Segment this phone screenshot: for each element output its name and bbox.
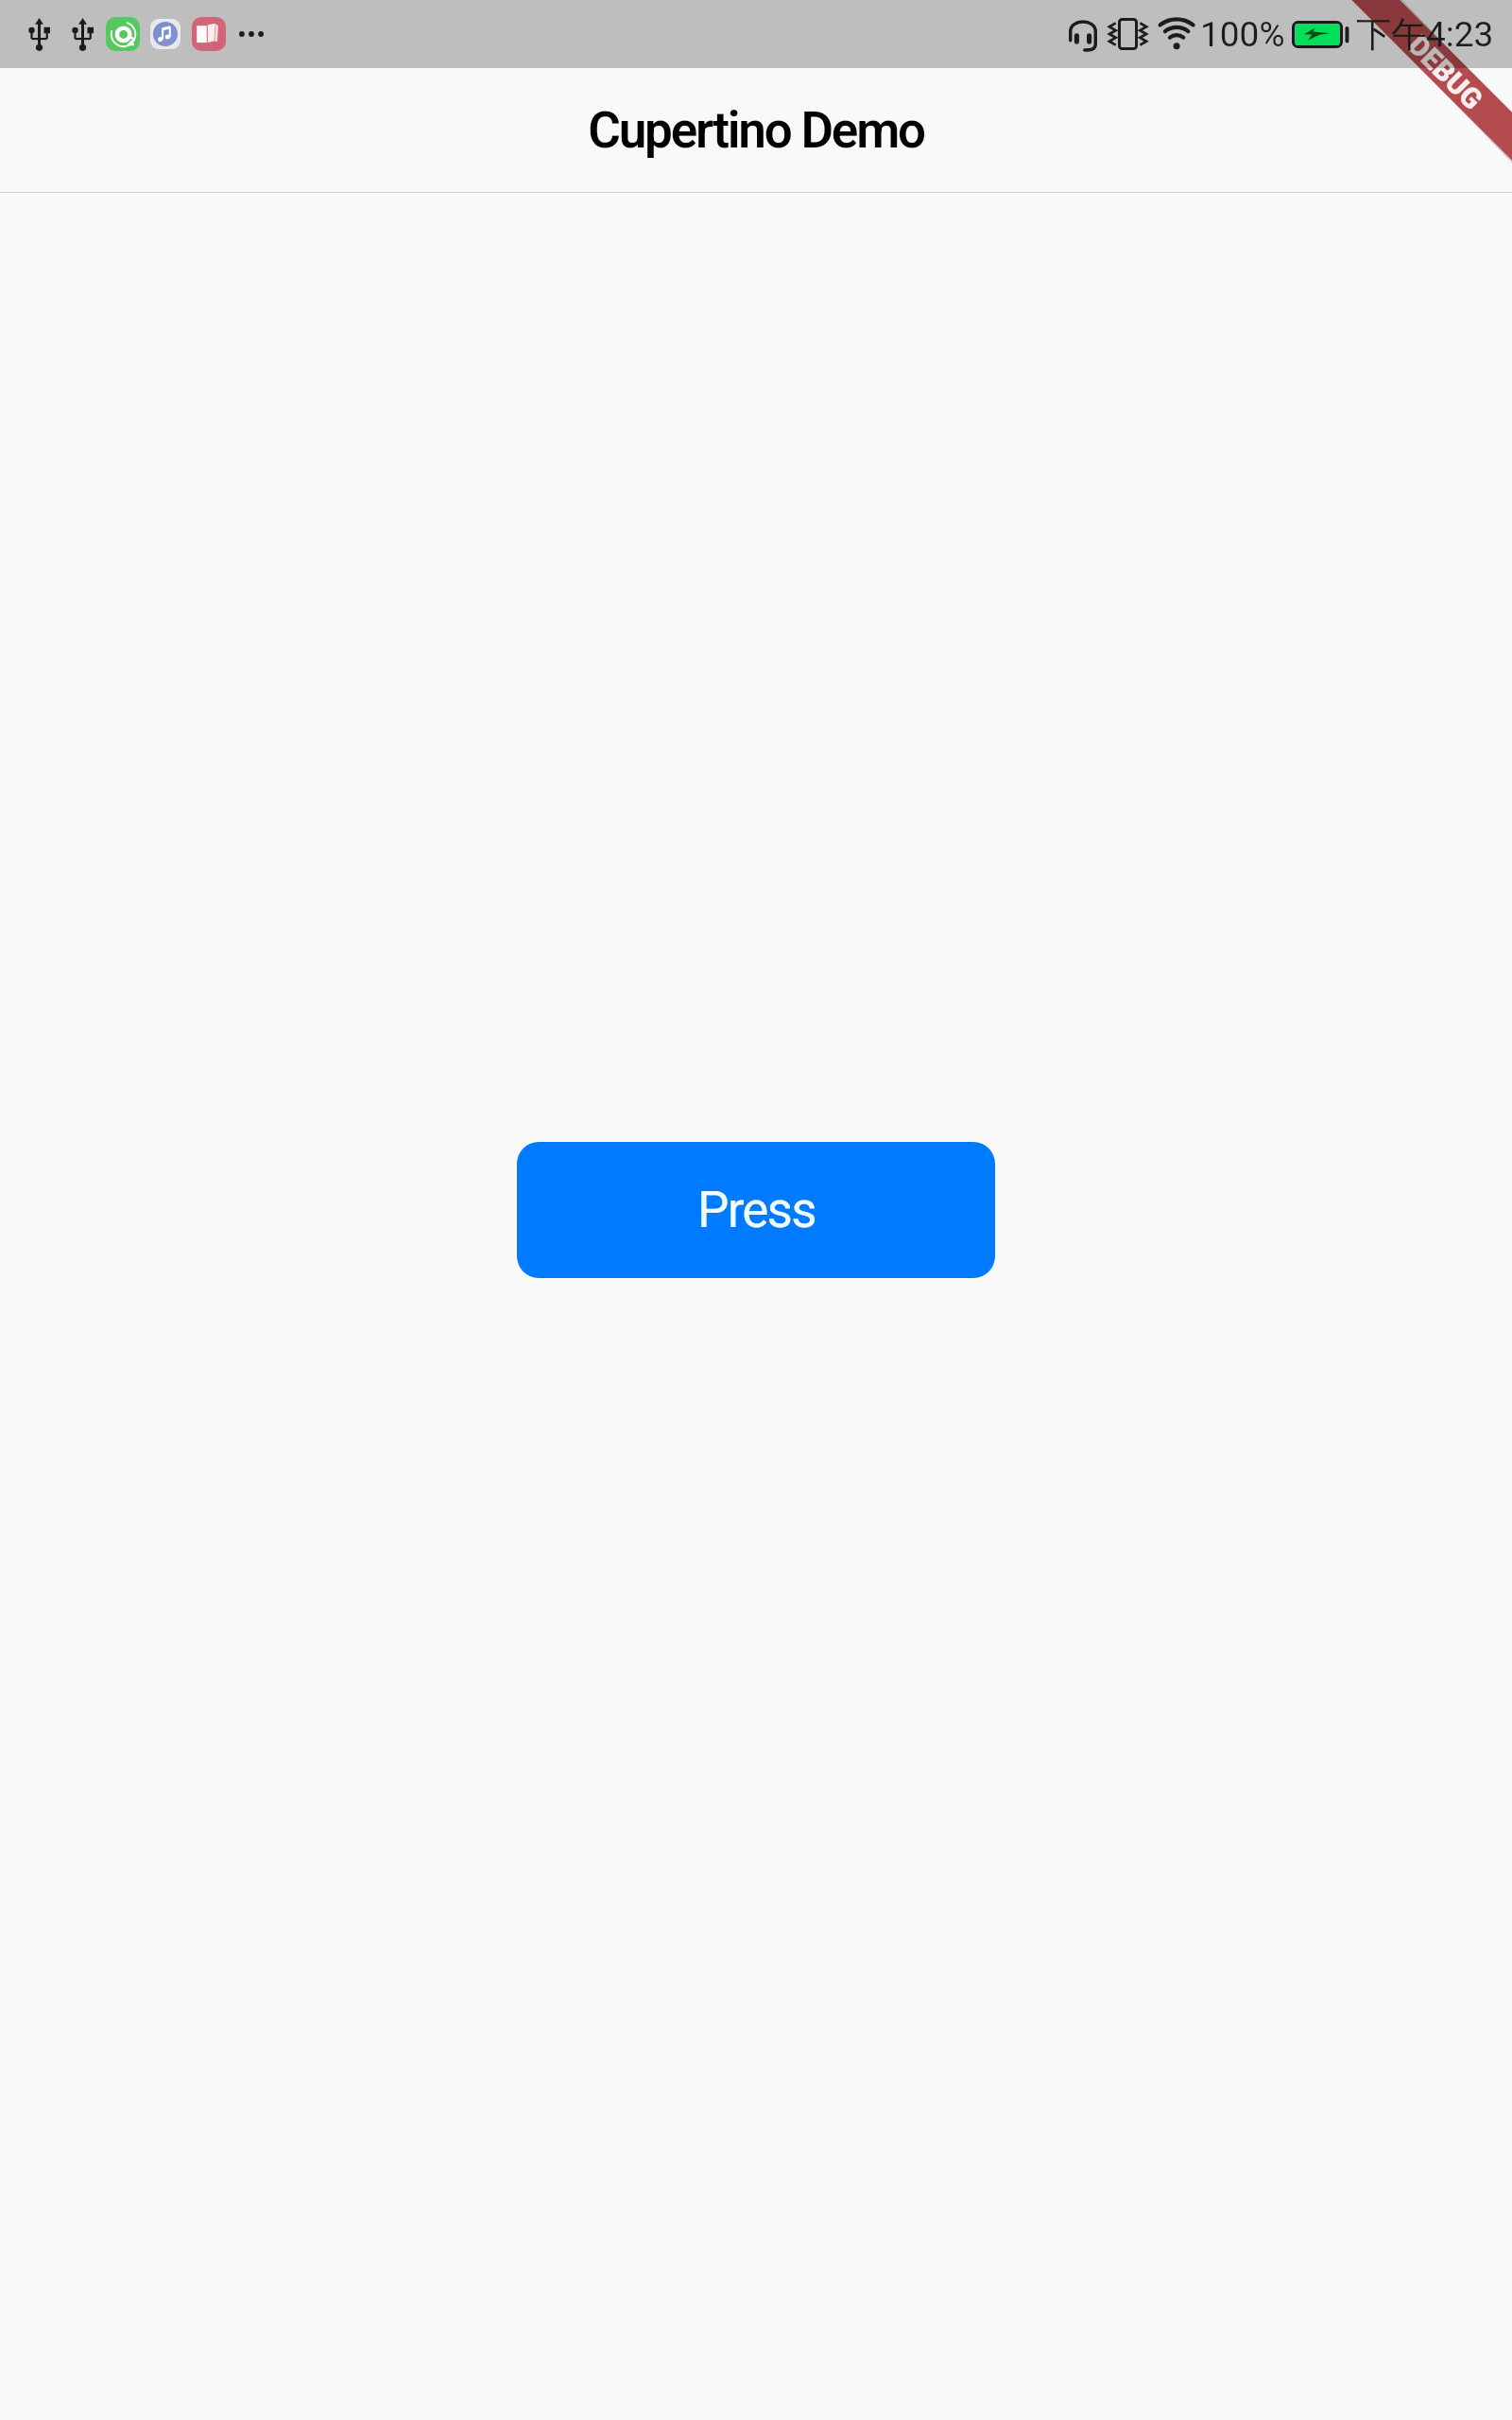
staticText: 100% bbox=[1200, 14, 1285, 55]
staticText: DEBUG bbox=[1402, 28, 1489, 116]
staticText: Press bbox=[697, 1181, 816, 1239]
staticText: Cupertino Demo bbox=[588, 101, 924, 160]
button[interactable]: Press bbox=[517, 1142, 995, 1278]
staticText: 下午4:23 bbox=[1356, 12, 1494, 57]
